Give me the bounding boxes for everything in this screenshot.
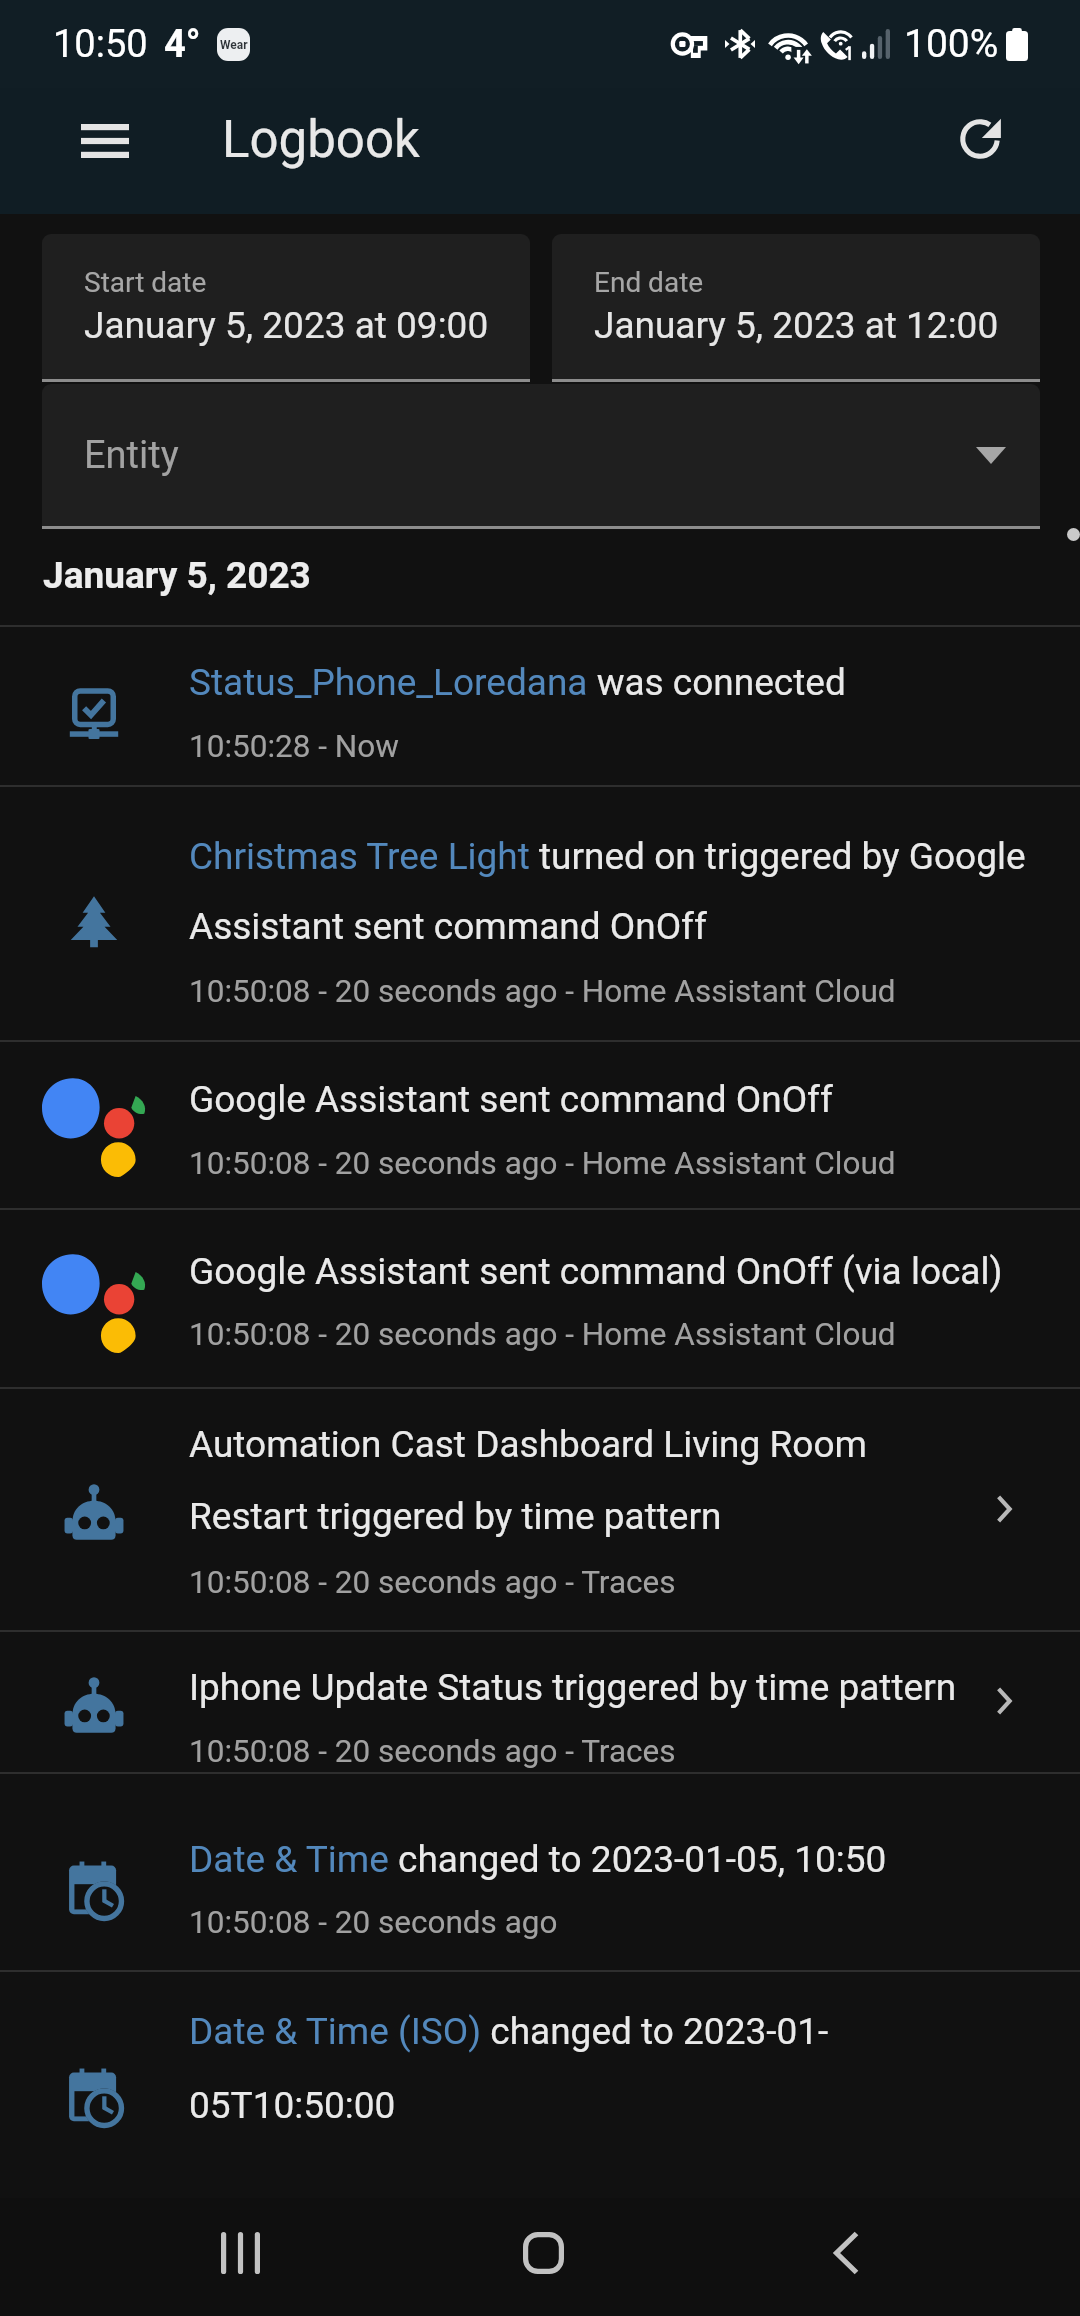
- button[interactable]: Iphone Update Status triggered by time p…: [0, 1630, 1080, 1772]
- staticText: January 5, 2023: [43, 554, 311, 597]
- staticText: Google Assistant sent command OnOff (via…: [189, 1250, 1003, 1293]
- staticText: 10:50:08 - 20 seconds ago: [189, 1904, 558, 1941]
- button[interactable]: End date: [552, 234, 1040, 382]
- button[interactable]: Start date: [42, 234, 530, 382]
- button[interactable]: Back: [791, 2198, 901, 2308]
- button[interactable]: Entity: [42, 384, 1040, 529]
- button[interactable]: Google Assistant sent command OnOff (via…: [0, 1208, 1080, 1387]
- button[interactable]: Open navigation menu: [58, 94, 152, 188]
- staticText: End date: [594, 266, 704, 299]
- staticText: Iphone Update Status triggered by time p…: [189, 1666, 957, 1709]
- button[interactable]: Status_Phone_Loredana was connected: [0, 625, 1080, 785]
- staticText: 10:50: [53, 22, 148, 67]
- button[interactable]: Refresh: [933, 92, 1027, 186]
- button[interactable]: Date & Time changed to 2023-01-05, 10:50: [0, 1772, 1080, 1970]
- staticText: 10:50:08 - 20 seconds ago - Home Assista…: [189, 1316, 896, 1353]
- button[interactable]: Christmas Tree Light turned on triggered…: [0, 785, 1080, 1040]
- button[interactable]: Automation Cast Dashboard Living Room Re…: [0, 1387, 1080, 1630]
- staticText: Wear: [220, 38, 248, 52]
- other: Show traces: [974, 1479, 1034, 1539]
- staticText: Start date: [84, 266, 207, 299]
- staticText: Christmas Tree Light turned on triggered…: [189, 835, 1029, 948]
- staticText: Entity: [84, 433, 179, 478]
- staticText: 4°: [164, 22, 201, 67]
- staticText: 10:50:08 - 20 seconds ago - Home Assista…: [189, 973, 896, 1010]
- staticText: Date & Time (ISO) changed to 2023-01- 05…: [189, 2010, 829, 2127]
- staticText: Logbook: [222, 110, 420, 170]
- staticText: 10:50:08 - 20 seconds ago - Home Assista…: [189, 1145, 896, 1182]
- staticText: Status_Phone_Loredana was connected: [189, 661, 846, 704]
- button[interactable]: Home: [488, 2198, 598, 2308]
- staticText: 10:50:08 - 20 seconds ago - Traces: [189, 1564, 676, 1601]
- staticText: 10:50:08 - 20 seconds ago - Traces: [189, 1733, 676, 1770]
- staticText: January 5, 2023 at 12:00: [594, 304, 999, 347]
- staticText: 100%: [904, 21, 999, 67]
- other: Show traces: [974, 1671, 1034, 1731]
- button[interactable]: Google Assistant sent command OnOff: [0, 1040, 1080, 1208]
- button[interactable]: Recent apps: [185, 2198, 295, 2308]
- button[interactable]: Date & Time (ISO) changed to 2023-01- 05…: [0, 1970, 1080, 2180]
- staticText: Date & Time changed to 2023-01-05, 10:50: [189, 1838, 887, 1881]
- staticText: Automation Cast Dashboard Living Room Re…: [189, 1423, 979, 1538]
- staticText: 10:50:28 - Now: [189, 728, 399, 765]
- staticText: Google Assistant sent command OnOff: [189, 1078, 833, 1121]
- staticText: January 5, 2023 at 09:00: [84, 304, 489, 347]
